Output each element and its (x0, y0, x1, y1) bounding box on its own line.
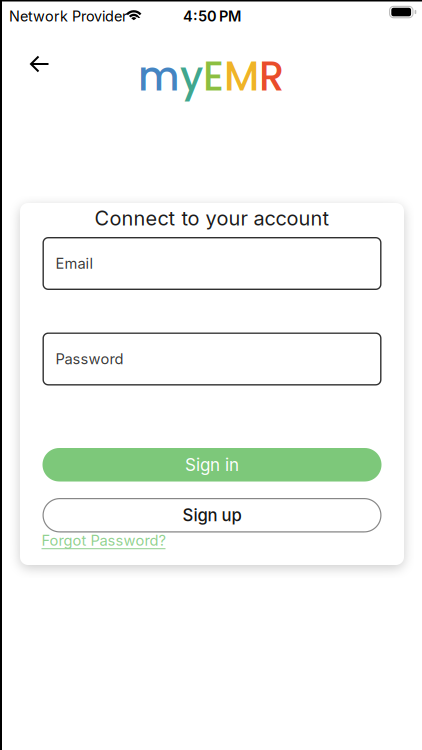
staticText: Forgot Password? (41, 531, 165, 549)
staticText: m (138, 48, 180, 104)
staticText: Sign up (182, 505, 241, 525)
staticText: Sign in (185, 454, 239, 475)
staticText: y (180, 48, 203, 104)
button[interactable]: Sign in (42, 448, 381, 481)
staticText: Connect to your account (94, 206, 329, 230)
staticText: Password (55, 350, 123, 368)
button[interactable]: Forgot Password? (41, 531, 165, 549)
button[interactable]: Back (19, 44, 60, 84)
button[interactable]: Password (42, 332, 381, 385)
staticText: Email (55, 255, 93, 272)
staticText: 4:50 PM (183, 7, 241, 25)
button[interactable]: Email (42, 237, 381, 290)
staticText: E (203, 48, 224, 104)
staticText: M (224, 48, 259, 104)
staticText: Network Provider (9, 7, 127, 25)
button[interactable]: Sign up (42, 498, 381, 532)
staticText: R (259, 48, 284, 104)
